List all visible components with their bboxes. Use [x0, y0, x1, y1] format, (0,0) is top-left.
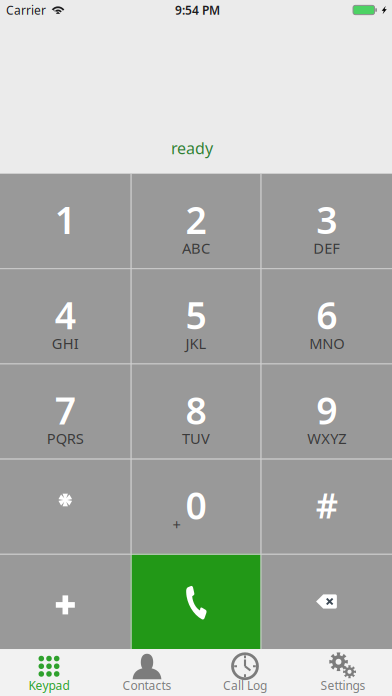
button[interactable]: 9	[261, 363, 392, 459]
staticText: 0	[185, 480, 206, 530]
staticText: ABC	[182, 238, 210, 258]
button[interactable]: 8	[131, 363, 261, 459]
staticText: 6	[316, 290, 337, 339]
staticText: Carrier	[6, 2, 46, 18]
button[interactable]: Settings	[294, 649, 392, 696]
staticText: MNO	[309, 333, 344, 353]
button[interactable]: 2	[131, 173, 261, 268]
staticText: Call Log	[223, 677, 267, 693]
staticText: 2	[185, 195, 206, 244]
button[interactable]: 4	[0, 268, 131, 363]
button[interactable]: 7	[0, 363, 131, 459]
staticText: +	[172, 515, 180, 534]
staticText: 9	[316, 385, 337, 435]
staticText: DEF	[313, 238, 340, 258]
staticText: 8	[185, 385, 206, 435]
button[interactable]: 3	[261, 173, 392, 268]
staticText: 5	[185, 290, 206, 339]
staticText: 4	[55, 290, 76, 339]
staticText: ready	[171, 137, 213, 159]
staticText: #	[316, 482, 338, 528]
staticText: 7	[55, 385, 76, 435]
button[interactable]: Keypad	[0, 649, 98, 696]
staticText: JKL	[185, 333, 206, 353]
button[interactable]: Call	[131, 554, 261, 649]
button[interactable]: Call Log	[196, 649, 294, 696]
staticText: TUV	[182, 429, 210, 448]
button[interactable]: 0	[131, 459, 261, 554]
staticText: 1	[55, 195, 76, 244]
button[interactable]: 6	[261, 268, 392, 363]
button[interactable]: Pound	[261, 459, 392, 554]
staticText: Contacts	[122, 677, 171, 693]
staticText: GHI	[52, 333, 79, 353]
staticText: Settings	[320, 677, 365, 693]
staticText: 9:54 PM	[175, 2, 220, 18]
button[interactable]: 1	[0, 173, 131, 268]
staticText: Keypad	[28, 677, 69, 693]
button[interactable]: Star	[0, 459, 131, 554]
button[interactable]: Contacts	[98, 649, 196, 696]
button[interactable]: 5	[131, 268, 261, 363]
button[interactable]: Plus	[0, 554, 131, 649]
staticText: WXYZ	[307, 429, 346, 448]
staticText: PQRS	[47, 429, 84, 448]
button[interactable]: Delete	[261, 554, 392, 649]
staticText: 3	[316, 195, 337, 244]
